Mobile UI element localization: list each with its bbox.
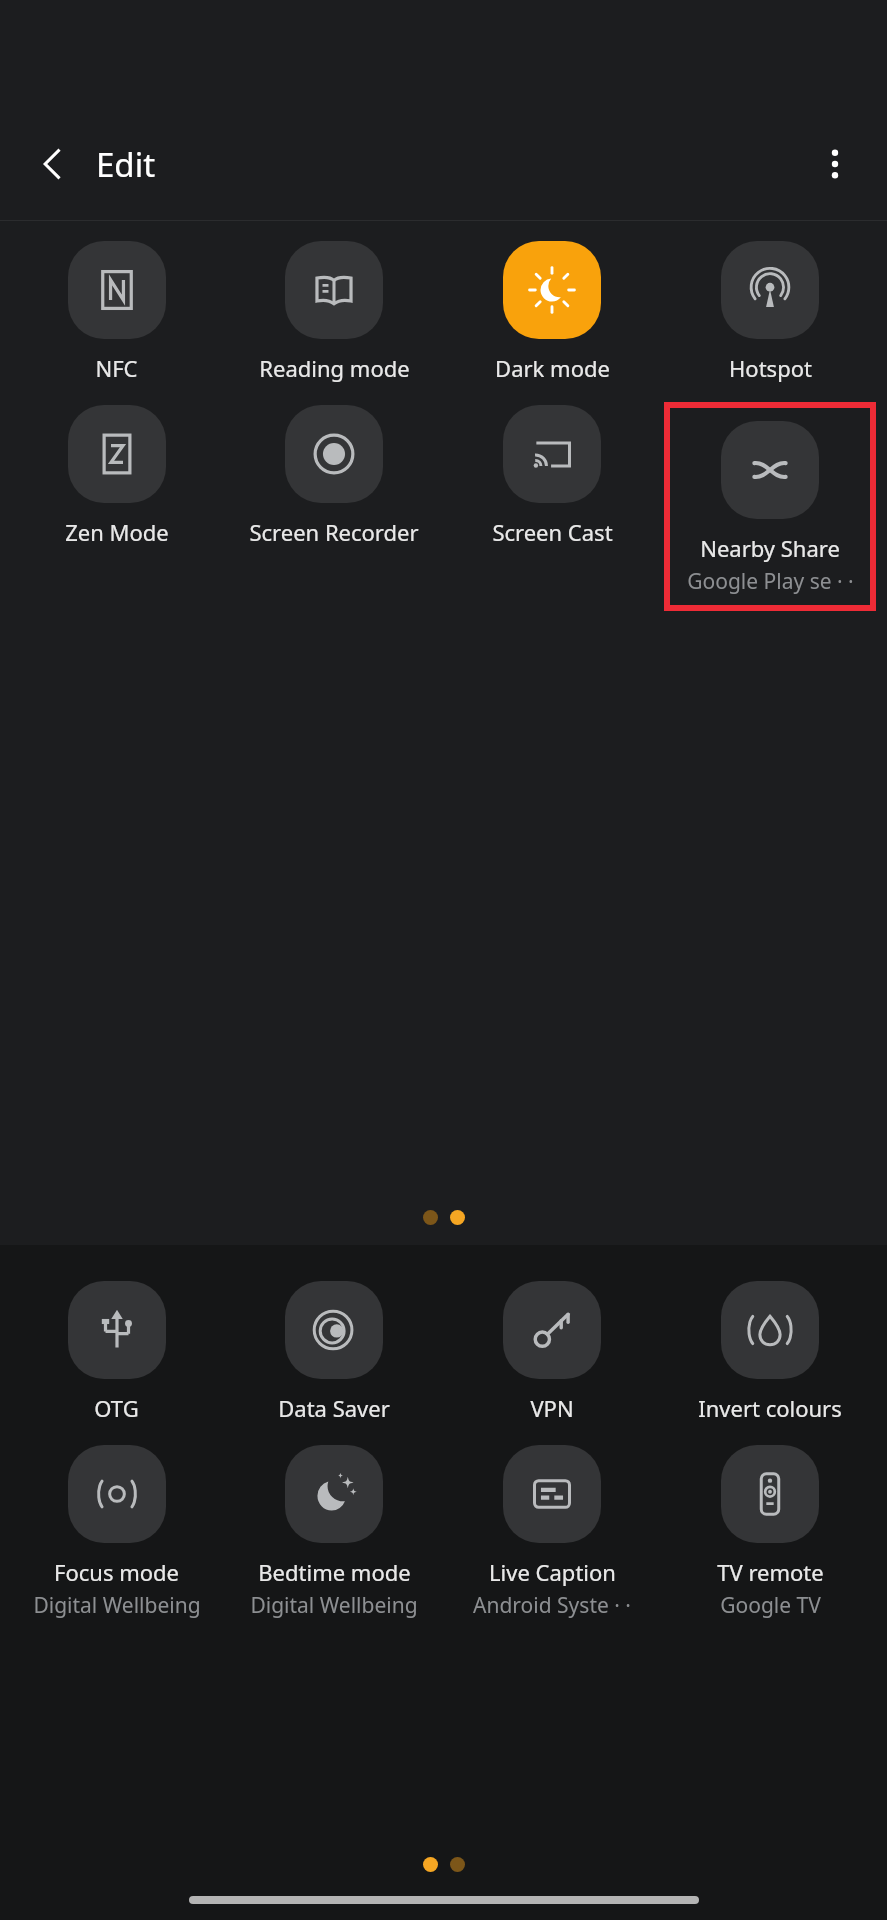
staticText: Bedtime mode [258, 1557, 411, 1587]
staticText: Focus mode [54, 1557, 179, 1587]
button[interactable]: Edit [96, 142, 156, 187]
button[interactable]: Screen Recorder [225, 405, 443, 547]
staticText: Hotspot [729, 353, 812, 383]
button[interactable]: Dark mode [443, 241, 661, 383]
staticText: Dark mode [495, 353, 610, 383]
staticText: Digital Wellbeing [33, 1591, 201, 1620]
button[interactable]: Data Saver [225, 1281, 443, 1423]
staticText: Digital Wellbeing [250, 1591, 418, 1620]
button[interactable]: VPN [443, 1281, 661, 1423]
button[interactable]: Live Caption [443, 1445, 661, 1620]
button[interactable]: Back [20, 132, 84, 196]
button[interactable]: Nearby Share [667, 421, 873, 596]
staticText: Google Play se · · [687, 567, 854, 596]
button[interactable]: Bedtime mode [225, 1445, 443, 1620]
staticText: OTG [94, 1393, 139, 1423]
staticText: Reading mode [259, 353, 410, 383]
button[interactable]: Focus mode [8, 1445, 225, 1620]
button[interactable]: More options [803, 132, 867, 196]
staticText: Google TV [720, 1591, 821, 1620]
button[interactable]: Invert colours [661, 1281, 879, 1423]
button[interactable]: NFC [8, 241, 225, 383]
staticText: Data Saver [278, 1393, 390, 1423]
staticText: VPN [530, 1393, 574, 1423]
button[interactable]: OTG [8, 1281, 225, 1423]
staticText: TV remote [717, 1557, 824, 1587]
staticText: Invert colours [698, 1393, 842, 1423]
staticText: Screen Cast [492, 517, 613, 547]
button[interactable]: TV remote [661, 1445, 879, 1620]
button[interactable]: Zen Mode [8, 405, 225, 547]
staticText: NFC [95, 353, 138, 383]
staticText: Screen Recorder [249, 517, 419, 547]
staticText: Live Caption [489, 1557, 616, 1587]
button[interactable]: Screen Cast [443, 405, 661, 547]
staticText: Nearby Share [700, 533, 840, 563]
staticText: Edit [96, 142, 156, 187]
button[interactable]: Hotspot [661, 241, 879, 383]
staticText: Android Syste · · [473, 1591, 631, 1620]
button[interactable]: Reading mode [225, 241, 443, 383]
staticText: Zen Mode [65, 517, 169, 547]
